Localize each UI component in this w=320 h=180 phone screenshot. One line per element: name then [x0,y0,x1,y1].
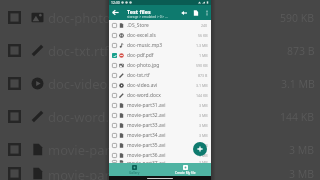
staticText: doc-txt.rtf [127,72,198,79]
staticText: 3 MB [199,160,208,163]
staticText: storage > emulated > 0 > ... [127,15,168,19]
staticText: 590 KB [196,63,208,68]
staticText: 3 MB [199,123,208,128]
staticText: movie-part35.avi [127,142,199,149]
staticText: doc-video.avi [127,82,196,89]
staticText: 3 MB [199,103,208,108]
button[interactable]: More options [202,5,211,20]
button[interactable]: doc-music.mp3 [109,40,211,50]
staticText: movie-part32.avi [127,112,199,119]
button[interactable]: New folder [190,5,201,20]
staticText: 3 MB [289,143,315,157]
button[interactable]: movie-part32.avi [109,110,211,120]
staticText: doc-word.docx [48,108,280,126]
staticText: doc-pdf.pdf [127,52,199,59]
staticText: 873 B [287,44,315,58]
staticText: 590 KB [280,11,315,25]
staticText: movie-part37.avi [127,160,199,163]
staticText: 144 KB [196,93,208,98]
staticText: movie-part31.avi [127,102,199,109]
staticText: doc-word.docx [127,92,196,99]
staticText: movie-part36.avi [127,152,199,159]
staticText: movie-part31.avi [48,141,289,159]
button[interactable]: movie-part33.avi [109,120,211,130]
staticText: 3 MB [199,143,208,148]
staticText: doc-excel.xls [127,32,198,39]
staticText: doc-photo.jpg [127,62,196,69]
staticText: 1 MB [199,53,208,58]
staticText: 240 [201,23,208,28]
button[interactable]: Back [110,5,121,20]
staticText: .DS_Store [127,22,201,29]
button[interactable]: doc-pdf.pdf [109,50,211,60]
staticText: 873 B [198,73,208,78]
button[interactable]: doc-video.avi [109,80,211,90]
staticText: doc-txt.rtf [48,42,287,60]
button[interactable]: movie-part36.avi [109,150,211,160]
staticText: 144 KB [280,110,315,124]
staticText: movie-part34.avi [127,132,199,139]
staticText: doc-video.avi [48,75,281,93]
staticText: 1.3 MB [196,43,208,48]
button[interactable]: doc-photo.jpg [109,60,211,70]
button[interactable]: Select all [178,5,189,20]
staticText: movie-part32.avi [48,166,289,180]
staticText: 3 MB [199,133,208,138]
staticText: 3.1 MB [281,77,315,91]
button[interactable]: doc-excel.xls [109,30,211,40]
button[interactable]: Add [193,142,207,156]
button[interactable]: movie-part35.avi [109,140,211,150]
button[interactable]: doc-word.docx [109,90,211,100]
staticText: Gallery [129,171,140,175]
button[interactable]: Create My file [160,163,211,176]
staticText: Test files [127,8,151,15]
staticText: 3 MB [289,167,315,180]
button[interactable]: Gallery [109,163,160,176]
staticText: doc-music.mp3 [127,42,196,49]
staticText: 3.1 MB [196,83,208,88]
staticText: 12:30 [111,0,120,5]
button[interactable]: movie-part31.avi [109,100,211,110]
staticText: 56 KB [198,33,208,38]
staticText: 3 MB [199,113,208,118]
button[interactable]: movie-part34.avi [109,130,211,140]
staticText: movie-part33.avi [127,122,199,129]
button[interactable]: .DS_Store [109,20,211,30]
button[interactable]: movie-part37.avi [109,160,211,163]
staticText: 3 MB [199,153,208,158]
button[interactable]: doc-txt.rtf [109,70,211,80]
staticText: doc-photo.jpg [48,9,280,27]
staticText: Create My file [175,171,196,175]
